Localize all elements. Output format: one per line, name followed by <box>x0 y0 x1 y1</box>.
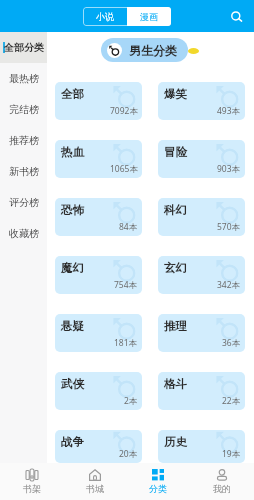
staticText: 342本 <box>217 279 241 291</box>
button[interactable]: 科幻 <box>158 198 245 236</box>
button[interactable]: 我的 <box>190 463 254 500</box>
staticText: 冒险 <box>164 145 187 159</box>
button[interactable]: 武侠 <box>55 372 142 410</box>
staticText: 1065本 <box>110 163 138 175</box>
button[interactable]: 书城 <box>63 463 126 500</box>
staticText: 书城 <box>86 483 104 494</box>
staticText: 最热榜 <box>9 72 39 85</box>
staticText: 84本 <box>119 221 138 233</box>
button[interactable]: 全部 <box>55 82 142 120</box>
staticText: 全部分类 <box>4 41 44 54</box>
staticText: 收藏榜 <box>9 227 39 240</box>
staticText: 分类 <box>149 483 167 494</box>
button[interactable]: 收藏榜 <box>0 218 47 249</box>
staticText: 7092本 <box>110 105 138 117</box>
staticText: 推荐榜 <box>9 134 39 147</box>
staticText: 格斗 <box>164 377 187 391</box>
staticText: 新书榜 <box>9 165 39 178</box>
staticText: 全部 <box>61 87 84 101</box>
staticText: 历史 <box>164 435 187 449</box>
button[interactable]: 完结榜 <box>0 94 47 125</box>
staticText: 我的 <box>213 483 231 494</box>
button[interactable]: 恐怖 <box>55 198 142 236</box>
staticText: 推理 <box>164 319 187 333</box>
staticText: 20本 <box>119 448 138 460</box>
button[interactable]: 评分榜 <box>0 187 47 218</box>
button[interactable]: Search <box>224 8 248 32</box>
staticText: 战争 <box>61 435 84 449</box>
staticText: 爆笑 <box>164 87 187 101</box>
staticText: 22本 <box>222 395 241 407</box>
staticText: 570本 <box>217 221 241 233</box>
staticText: 181本 <box>114 337 138 349</box>
button[interactable]: 新书榜 <box>0 156 47 187</box>
staticText: 36本 <box>222 337 241 349</box>
button[interactable]: 格斗 <box>158 372 245 410</box>
button[interactable]: 漫画 <box>127 7 171 26</box>
button[interactable]: 战争 <box>55 430 142 463</box>
button[interactable]: 推理 <box>158 314 245 352</box>
button[interactable]: 全部分类 <box>0 32 47 63</box>
staticText: 武侠 <box>61 377 84 391</box>
staticText: 754本 <box>114 279 138 291</box>
staticText: 493本 <box>217 105 241 117</box>
staticText: 玄幻 <box>164 261 187 275</box>
staticText: 评分榜 <box>9 196 39 209</box>
staticText: 魔幻 <box>61 261 84 275</box>
button[interactable]: 悬疑 <box>55 314 142 352</box>
button[interactable]: 冒险 <box>158 140 245 178</box>
staticText: 恐怖 <box>61 203 84 217</box>
staticText: 903本 <box>217 163 241 175</box>
button[interactable]: 魔幻 <box>55 256 142 294</box>
staticText: 男生分类 <box>129 43 177 58</box>
button[interactable]: 玄幻 <box>158 256 245 294</box>
button[interactable]: 爆笑 <box>158 82 245 120</box>
button[interactable]: 书架 <box>0 463 63 500</box>
button[interactable]: 分类 <box>126 463 190 500</box>
staticText: 2本 <box>124 395 138 407</box>
staticText: 19本 <box>222 448 241 460</box>
staticText: 科幻 <box>164 203 187 217</box>
button[interactable]: 最热榜 <box>0 63 47 94</box>
button[interactable]: 热血 <box>55 140 142 178</box>
staticText: 悬疑 <box>61 319 84 333</box>
staticText: 漫画 <box>140 11 158 22</box>
button[interactable]: 男生分类 <box>101 38 188 62</box>
staticText: 书架 <box>23 483 41 494</box>
button[interactable]: 小说 <box>83 7 127 26</box>
button[interactable]: 推荐榜 <box>0 125 47 156</box>
staticText: 小说 <box>96 11 114 22</box>
staticText: 热血 <box>61 145 84 159</box>
staticText: 完结榜 <box>9 103 39 116</box>
button[interactable]: 历史 <box>158 430 245 463</box>
